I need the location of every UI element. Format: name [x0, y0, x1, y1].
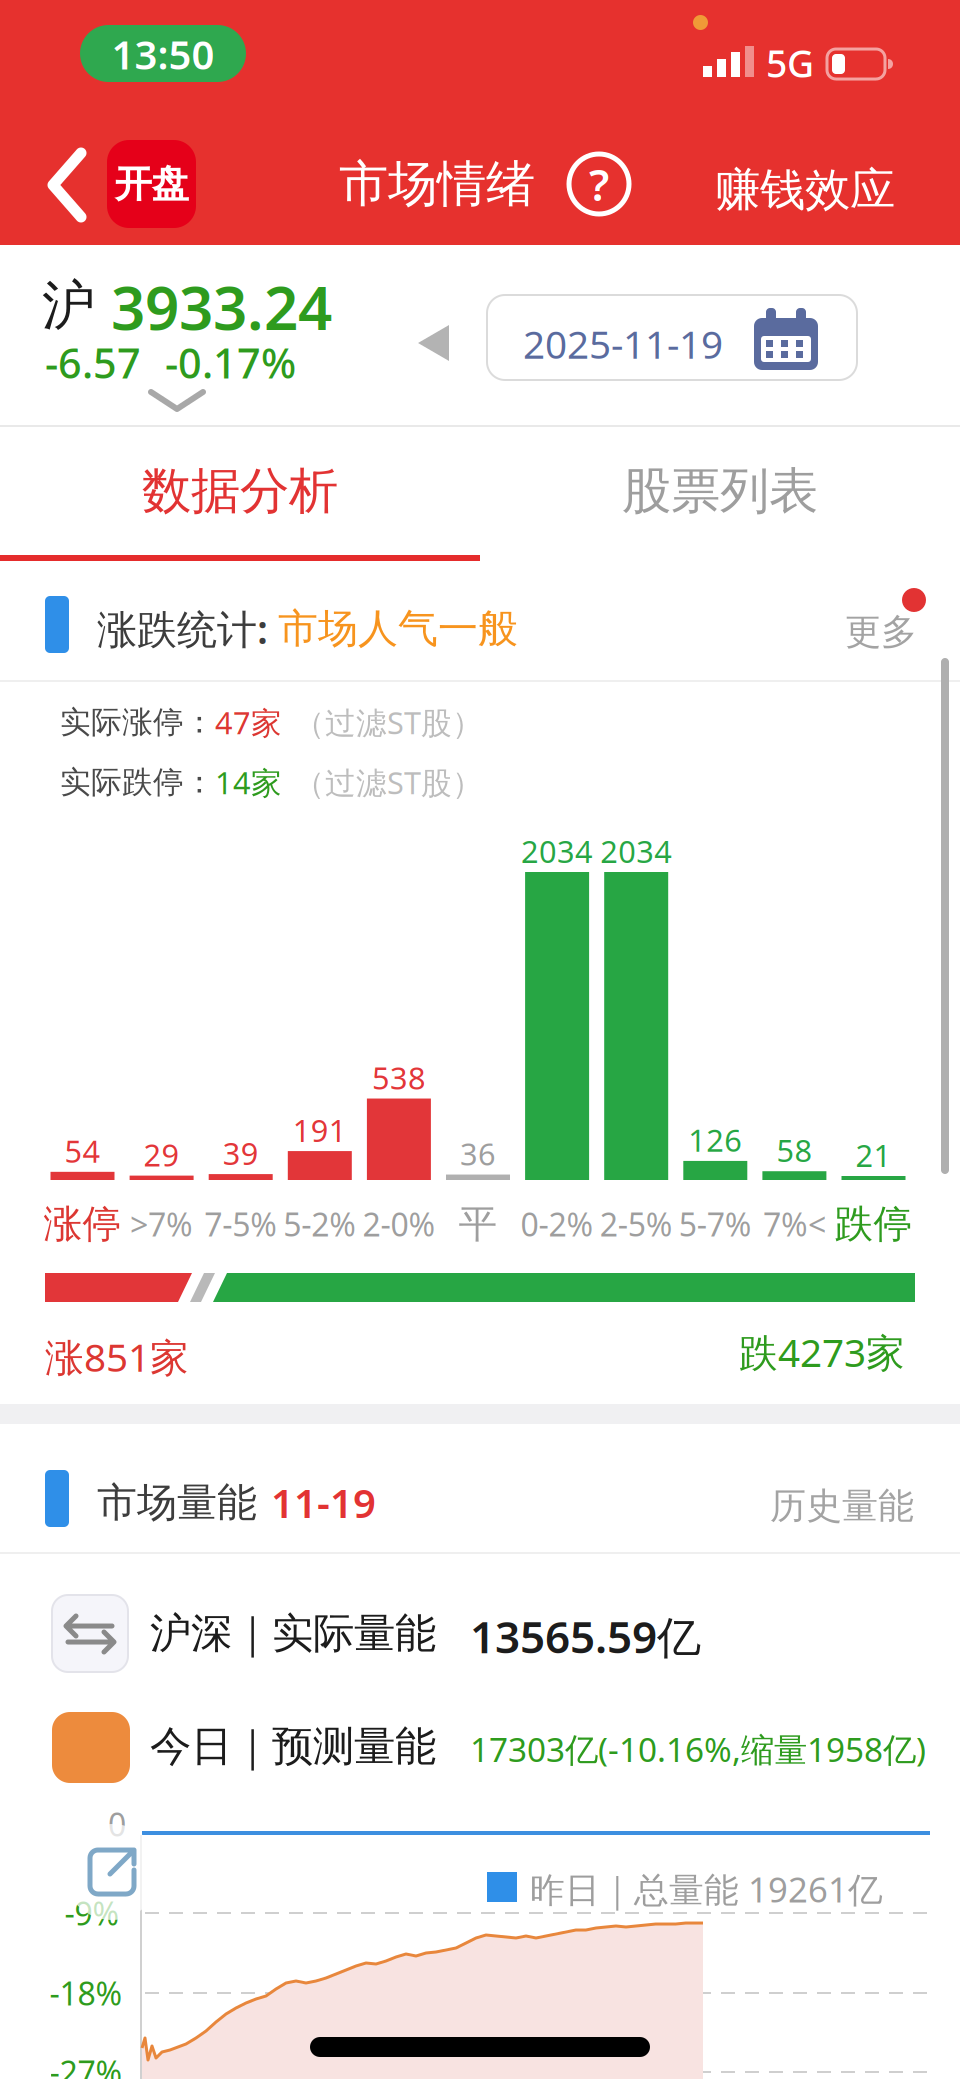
- staticText: 今日｜预测量能: [150, 1721, 436, 1772]
- staticText: 36: [460, 1133, 496, 1174]
- staticText: 2034: [600, 831, 672, 871]
- staticText: 市场人气一般: [278, 604, 518, 653]
- staticText: 2025-11-19: [523, 318, 723, 369]
- button[interactable]: 前一天: [418, 325, 449, 361]
- staticText: 5-7%: [679, 1203, 752, 1245]
- staticText: ?: [589, 155, 609, 213]
- staticText: 赚钱效应: [715, 162, 895, 218]
- staticText: 涨851家: [45, 1331, 189, 1382]
- staticText: -27%: [49, 2051, 122, 2079]
- staticText: 0-2%: [521, 1203, 594, 1245]
- staticText: 21: [855, 1135, 891, 1175]
- staticText: （过滤ST股）: [294, 702, 483, 743]
- staticText: 数据分析: [142, 461, 338, 521]
- staticText: 市场情绪: [339, 154, 535, 214]
- staticText: （过滤ST股）: [294, 762, 483, 803]
- staticText: 涨停: [43, 1200, 121, 1248]
- staticText: 历史量能: [770, 1484, 914, 1528]
- staticText: 昨日｜总量能 19261亿: [530, 1866, 883, 1912]
- staticText: 3933.24: [111, 267, 332, 347]
- staticText: 沪: [42, 273, 95, 338]
- staticText: 13:50: [111, 27, 214, 80]
- staticText: 29: [144, 1134, 180, 1175]
- button[interactable]: 帮助: [569, 154, 629, 214]
- staticText: 平: [458, 1200, 497, 1248]
- staticText: 7%<: [763, 1203, 826, 1245]
- button[interactable]: 沪: [0, 245, 340, 425]
- staticText: 5G: [766, 38, 814, 88]
- staticText: 47家: [215, 702, 282, 743]
- staticText: 14家: [215, 762, 282, 803]
- staticText: -6.57: [45, 335, 141, 390]
- staticText: 11-19: [271, 1476, 376, 1529]
- staticText: >7%: [130, 1203, 193, 1245]
- staticText: 市场量能: [97, 1478, 257, 1527]
- staticText: 更多: [845, 610, 917, 654]
- staticText: 13565.59亿: [470, 1607, 701, 1665]
- button[interactable]: 数据分析: [0, 427, 480, 555]
- staticText: 实际跌停：: [60, 763, 215, 801]
- button[interactable]: 市场量能: [0, 1424, 600, 1544]
- button[interactable]: 涨跌统计:: [0, 561, 700, 676]
- staticText: 191: [293, 1110, 347, 1150]
- staticText: -0.17%: [165, 335, 296, 390]
- staticText: 实际涨停：: [60, 703, 215, 741]
- staticText: 5-2%: [283, 1203, 356, 1245]
- staticText: 沪深｜实际量能: [150, 1608, 436, 1659]
- staticText: 跌4273家: [739, 1326, 905, 1378]
- button[interactable]: 分享: [64, 1824, 160, 1920]
- staticText: 58: [776, 1130, 812, 1171]
- staticText: 股票列表: [622, 461, 818, 521]
- staticText: 2-0%: [362, 1203, 435, 1245]
- staticText: 7-5%: [204, 1203, 277, 1245]
- staticText: 54: [64, 1130, 100, 1171]
- button[interactable]: 切换: [52, 1595, 128, 1672]
- button[interactable]: 2025-11-19: [487, 295, 857, 380]
- staticText: 126: [688, 1120, 742, 1160]
- staticText: -18%: [49, 1972, 122, 2014]
- staticText: 开盘: [114, 161, 188, 207]
- staticText: 2034: [521, 831, 593, 871]
- button[interactable]: Back: [50, 151, 86, 219]
- button[interactable]: 历史量能: [770, 1484, 914, 1528]
- staticText: -9%: [64, 1892, 119, 1934]
- button[interactable]: 赚钱效应: [715, 162, 895, 218]
- staticText: 0: [108, 1803, 126, 1845]
- staticText: 2-5%: [600, 1203, 673, 1245]
- staticText: 17303亿(-10.16%,缩量1958亿): [470, 1727, 926, 1771]
- staticText: 涨跌统计:: [97, 602, 268, 655]
- button[interactable]: 更多: [845, 588, 935, 658]
- button[interactable]: 股票列表: [480, 427, 960, 555]
- staticText: 538: [372, 1057, 426, 1098]
- staticText: 跌停: [834, 1200, 912, 1248]
- staticText: 39: [223, 1133, 259, 1173]
- button[interactable]: 开盘: [107, 140, 196, 228]
